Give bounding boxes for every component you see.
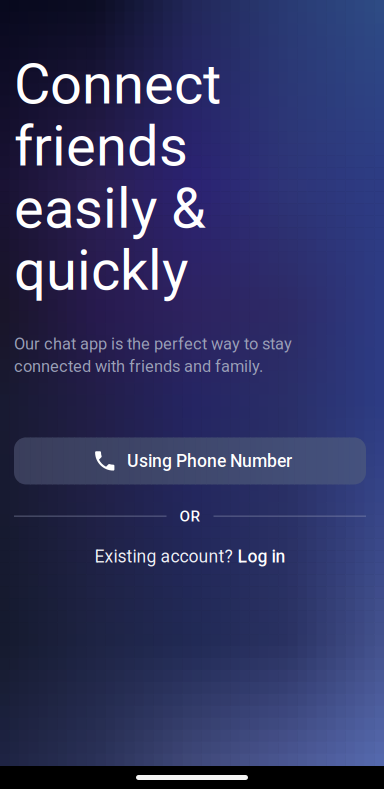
staticText: connected with friends and family. [14,357,263,376]
staticText: quickly [14,238,188,303]
staticText: Using Phone Number [127,451,292,471]
button[interactable]: Existing account? [14,546,366,567]
staticText: Log in [237,546,285,567]
staticText: OR [179,507,200,525]
button[interactable]: Using Phone Number [14,437,366,484]
staticText: Our chat app is the perfect way to stay [14,334,292,353]
staticText: Connect [14,51,221,117]
staticText: friends [14,114,188,179]
staticText: easily & [14,176,206,241]
staticText: Existing account? [94,546,232,567]
